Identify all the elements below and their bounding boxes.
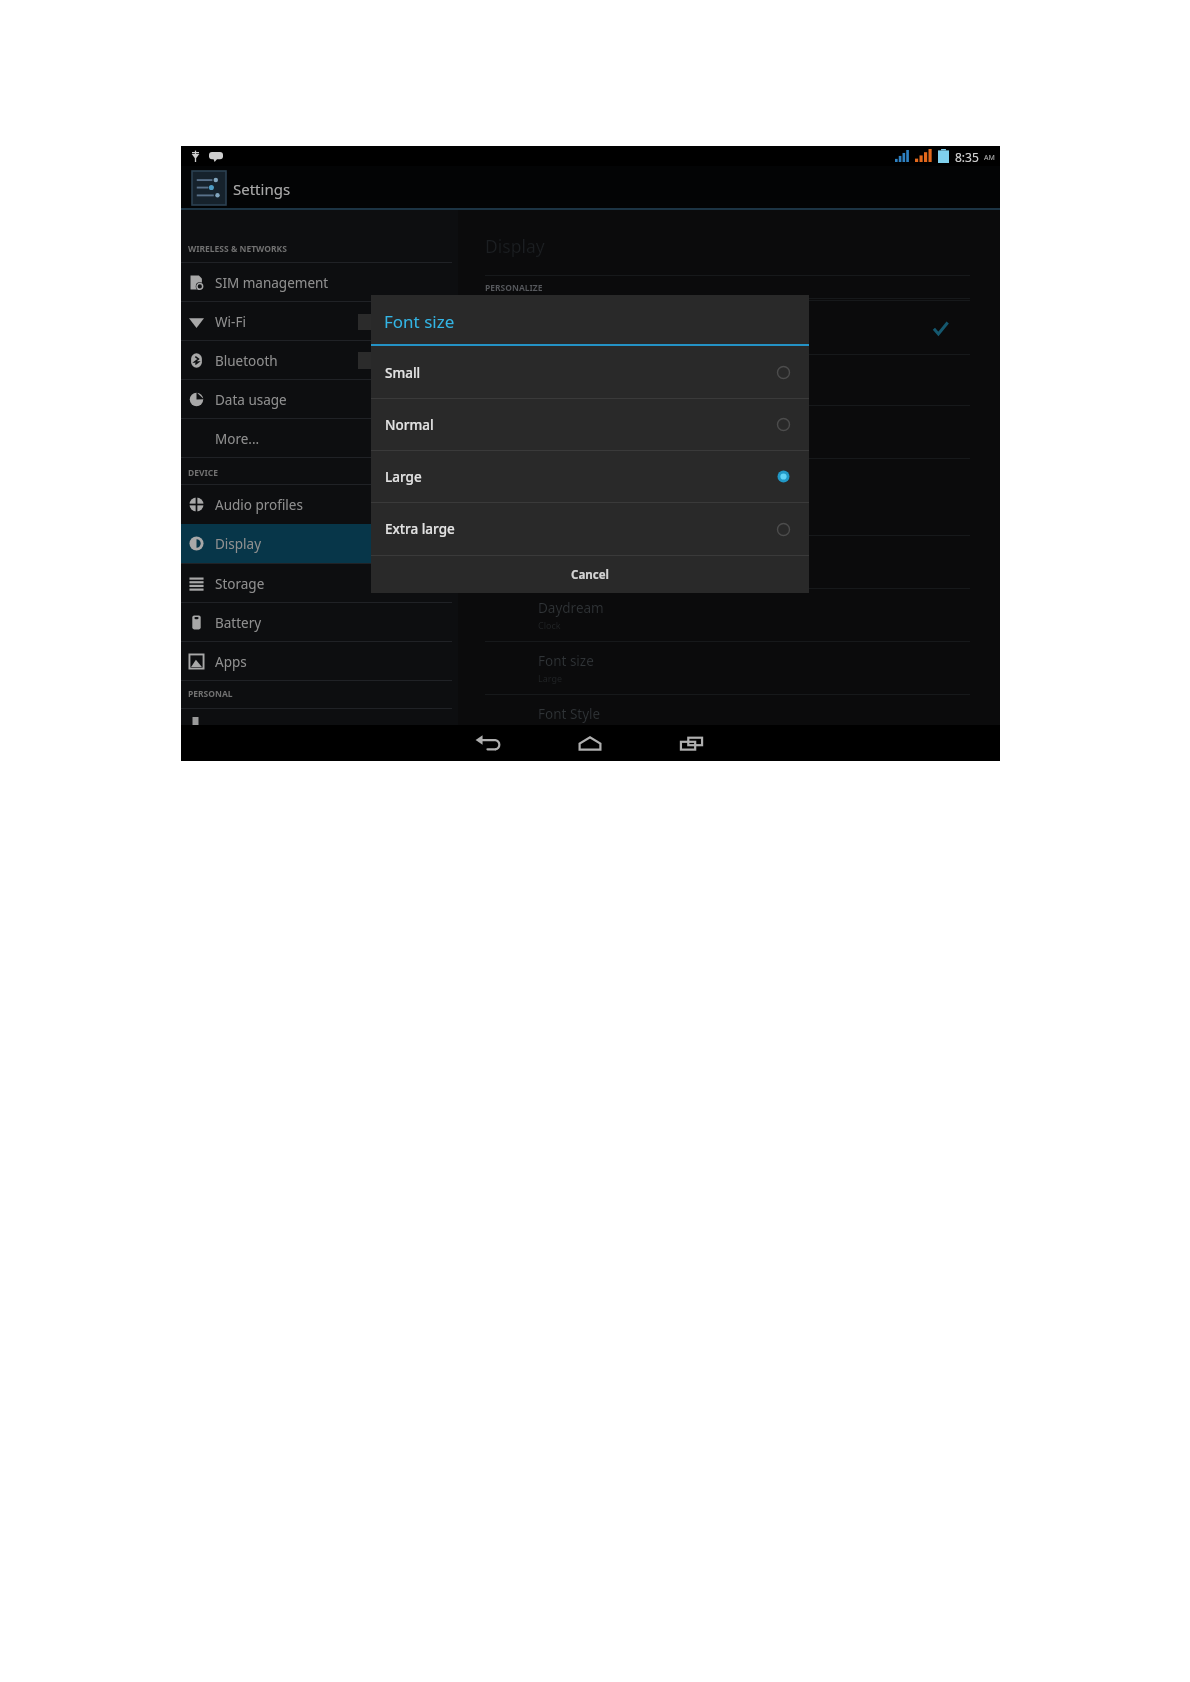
staticText: Large	[385, 468, 422, 486]
staticText: Audio profiles	[215, 496, 303, 514]
button[interactable]: Back	[453, 725, 525, 761]
button[interactable]: More...	[181, 419, 458, 458]
button[interactable]: Auto-rotate screen, on	[458, 301, 1000, 354]
button[interactable]: Normal	[371, 399, 809, 450]
button[interactable]: Settings app icon	[192, 171, 226, 205]
button[interactable]: Audio profiles	[181, 485, 458, 524]
staticText: Data usage	[215, 391, 287, 409]
staticText: Font size	[538, 652, 594, 670]
button[interactable]: Small	[371, 347, 809, 398]
staticText: Small	[385, 364, 421, 382]
button[interactable]: Display	[181, 524, 458, 563]
button[interactable]: Cancel	[371, 556, 809, 593]
staticText: Daydream	[538, 599, 604, 617]
button[interactable]: Font size	[458, 641, 1000, 694]
button[interactable]: Large	[371, 451, 809, 502]
staticText: Settings	[233, 179, 291, 199]
button[interactable]: Home	[554, 725, 626, 761]
staticText: AM	[984, 153, 995, 163]
staticText: SIM management	[215, 274, 329, 292]
button[interactable]: Font Style	[458, 694, 1000, 725]
button[interactable]: Data usage	[181, 380, 458, 419]
staticText: Font Style	[538, 705, 601, 723]
staticText: Display	[485, 234, 545, 258]
staticText: Clock	[538, 619, 561, 631]
button[interactable]: Recent apps	[655, 725, 727, 761]
button[interactable]: Apps	[181, 642, 458, 681]
button[interactable]: Battery	[181, 603, 458, 642]
staticText: Apps	[215, 653, 247, 671]
staticText: PERSONAL	[188, 688, 233, 700]
staticText: More...	[215, 430, 260, 448]
button[interactable]: Storage	[181, 564, 458, 603]
staticText: DEVICE	[188, 467, 219, 479]
staticText: Display	[215, 535, 262, 553]
button[interactable]: Extra large	[371, 503, 809, 555]
staticText: Extra large	[385, 520, 455, 538]
staticText: Wi-Fi	[215, 313, 246, 331]
button[interactable]: Wi-Fi	[181, 302, 458, 341]
staticText: PERSONALIZE	[485, 282, 543, 294]
staticText: Storage	[215, 575, 265, 593]
staticText: Cancel	[571, 567, 609, 583]
staticText: Font size	[384, 310, 455, 333]
staticText: WIRELESS & NETWORKS	[188, 243, 287, 255]
staticText: Battery	[215, 614, 262, 632]
staticText: 8:35	[955, 149, 979, 165]
staticText: Bluetooth	[215, 352, 278, 370]
staticText: Large	[538, 672, 563, 684]
staticText: Normal	[385, 416, 434, 434]
button[interactable]: SIM management	[181, 263, 458, 302]
button[interactable]: Bluetooth	[181, 341, 458, 380]
button[interactable]: Daydream	[458, 588, 1000, 641]
